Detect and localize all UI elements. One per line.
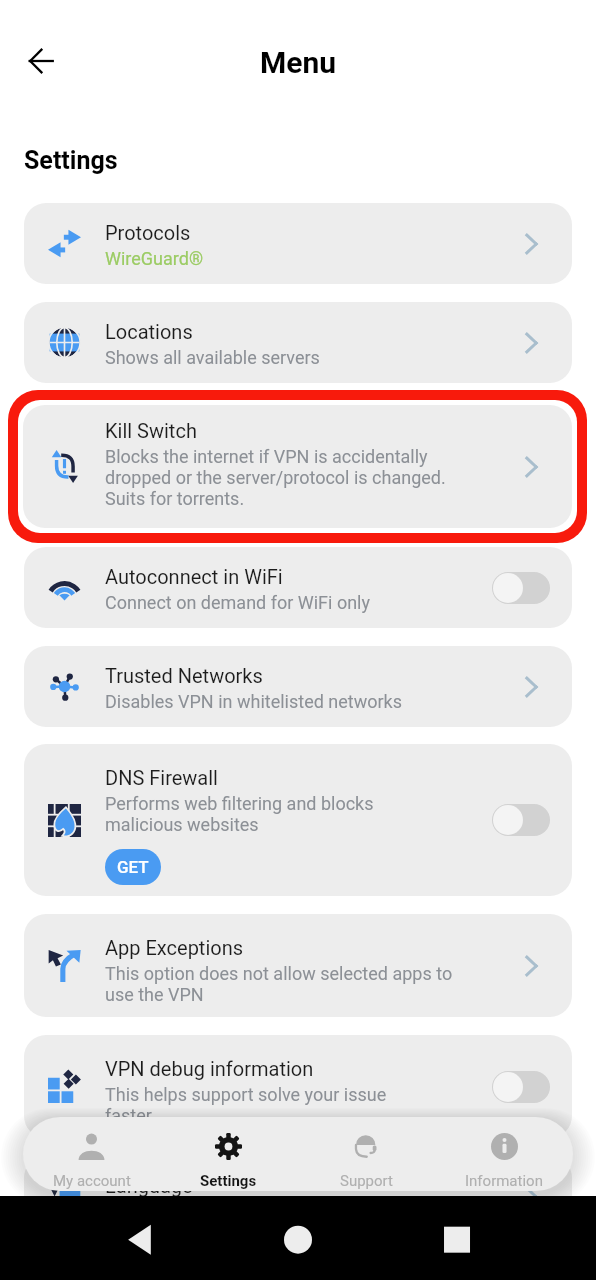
staticText: Suits for torrents. xyxy=(105,488,245,509)
staticText: My account xyxy=(53,1172,131,1190)
button[interactable]: GET xyxy=(105,849,161,885)
staticText: Settings xyxy=(200,1172,257,1190)
button[interactable]: Toggle xyxy=(492,572,550,604)
staticText: Autoconnect in WiFi xyxy=(105,565,283,588)
staticText: VPN debug information xyxy=(105,1057,314,1080)
button[interactable]: VPN debug information xyxy=(24,1035,572,1138)
staticText: Protocols xyxy=(105,221,191,244)
staticText: Kill Switch xyxy=(105,419,197,442)
button[interactable]: Information xyxy=(435,1117,573,1191)
button[interactable]: Toggle xyxy=(492,804,550,836)
staticText: dropped or the server/protocol is change… xyxy=(105,467,446,488)
staticText: Settings xyxy=(24,146,118,175)
staticText: Performs web filtering and blocks xyxy=(105,793,374,814)
button[interactable]: Trusted Networks xyxy=(24,646,572,727)
staticText: This helps support solve your issue xyxy=(105,1084,387,1105)
staticText: faster xyxy=(105,1105,152,1126)
button[interactable]: Back xyxy=(29,49,53,73)
staticText: App Exceptions xyxy=(105,936,244,959)
staticText: Locations xyxy=(105,320,193,343)
button[interactable]: My account xyxy=(23,1117,160,1191)
button[interactable]: Autoconnect in WiFi xyxy=(24,547,572,628)
staticText: use the VPN xyxy=(105,984,204,1005)
staticText: Information xyxy=(465,1172,543,1190)
staticText: Blocks the internet if VPN is accidental… xyxy=(105,446,428,467)
button[interactable]: DNS Firewall xyxy=(24,744,572,896)
button[interactable]: Kill Switch xyxy=(23,405,572,528)
staticText: malicious websites xyxy=(105,814,259,835)
button[interactable]: Support xyxy=(297,1117,435,1191)
staticText: Support xyxy=(340,1172,393,1190)
staticText: Trusted Networks xyxy=(105,664,263,687)
button[interactable]: Locations xyxy=(24,302,572,383)
staticText: Disables VPN in whitelisted networks xyxy=(105,691,402,712)
button[interactable]: Settings xyxy=(160,1117,297,1191)
button[interactable]: Toggle xyxy=(492,1071,550,1103)
staticText: GET xyxy=(117,857,149,877)
staticText: Shows all available servers xyxy=(105,347,320,368)
staticText: This option does not allow selected apps… xyxy=(105,963,453,984)
staticText: Connect on demand for WiFi only xyxy=(105,592,371,613)
button[interactable]: Language xyxy=(24,1156,572,1237)
staticText: WireGuard® xyxy=(105,248,204,269)
staticText: Menu xyxy=(260,45,337,80)
button[interactable]: Protocols xyxy=(24,203,572,284)
staticText: DNS Firewall xyxy=(105,766,218,789)
staticText: Language xyxy=(105,1174,193,1197)
button[interactable]: App Exceptions xyxy=(24,914,572,1017)
